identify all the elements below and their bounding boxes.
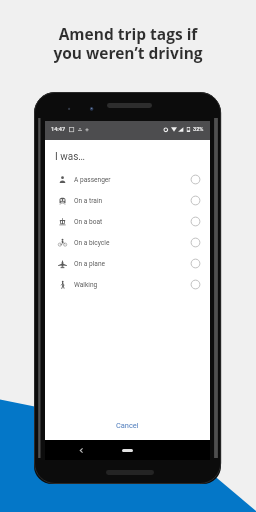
button[interactable]: Back	[77, 446, 86, 455]
button[interactable]: On a train	[45, 190, 210, 211]
staticText: Walking	[74, 281, 98, 289]
staticText: A passenger	[74, 176, 111, 184]
staticText: On a boat	[74, 218, 103, 226]
button[interactable]: Cancel	[110, 419, 145, 432]
staticText: I was…	[55, 151, 86, 163]
button[interactable]: A passenger	[45, 169, 210, 190]
staticText: 32%	[193, 126, 204, 133]
staticText: On a bicycle	[74, 239, 110, 247]
staticText: 14:47	[51, 126, 66, 133]
button[interactable]: On a boat	[45, 211, 210, 232]
button[interactable]: Home	[122, 449, 133, 452]
staticText: On a train	[74, 197, 103, 205]
button[interactable]: On a plane	[45, 253, 210, 274]
button[interactable]: Walking	[45, 274, 210, 295]
staticText: Amend trip tags if you weren’t driving	[0, 23, 256, 63]
staticText: On a plane	[74, 260, 106, 268]
button[interactable]: On a bicycle	[45, 232, 210, 253]
